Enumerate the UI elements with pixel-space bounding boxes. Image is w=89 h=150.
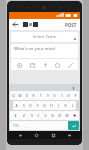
button[interactable]: W: [16, 91, 23, 100]
button[interactable]: R: [30, 91, 37, 100]
staticText: L: [72, 103, 74, 108]
button[interactable]: POST: [65, 22, 77, 28]
staticText: D: [29, 103, 32, 108]
button[interactable]: A: [13, 101, 20, 110]
staticText: H: [50, 103, 53, 108]
button[interactable]: Photo: [14, 60, 24, 70]
staticText: U: [53, 93, 56, 98]
button[interactable]: Home: [32, 131, 40, 139]
button[interactable]: M: [63, 111, 70, 120]
button[interactable]: Back: [11, 20, 20, 29]
button[interactable]: E: [23, 91, 30, 100]
staticText: V: [44, 113, 47, 118]
button[interactable]: Numbers: [10, 121, 22, 130]
button[interactable]: D: [27, 101, 34, 110]
button[interactable]: .: [62, 121, 68, 130]
staticText: G: [43, 103, 46, 108]
staticText: C: [37, 113, 40, 118]
button[interactable]: O: [65, 91, 72, 100]
button[interactable]: Camera: [27, 60, 37, 70]
button[interactable]: Menu: [65, 131, 73, 139]
button[interactable]: B: [49, 111, 56, 120]
button[interactable]: Q: [10, 91, 16, 100]
button[interactable]: L: [69, 101, 76, 110]
staticText: A: [15, 103, 18, 108]
button[interactable]: T: [37, 91, 44, 100]
staticText: N: [58, 113, 61, 118]
staticText: J: [58, 103, 59, 108]
staticText: I: [61, 93, 63, 98]
staticText: Q: [12, 93, 15, 98]
button[interactable]: H: [48, 101, 55, 110]
staticText: M: [65, 113, 69, 118]
button[interactable]: Select Team: [11, 32, 78, 42]
staticText: W: [18, 93, 22, 98]
button[interactable]: C: [35, 111, 42, 120]
staticText: ?123: [13, 124, 19, 128]
staticText: E: [26, 93, 28, 98]
staticText: ,: [25, 123, 26, 128]
button[interactable]: S: [20, 101, 27, 110]
button[interactable]: Enter: [68, 121, 79, 130]
staticText: K: [64, 103, 67, 108]
button[interactable]: Record: [40, 60, 50, 70]
button[interactable]: Back: [16, 131, 24, 139]
button[interactable]: U: [51, 91, 58, 100]
button[interactable]: G: [41, 101, 48, 110]
staticText: O: [67, 93, 70, 98]
button[interactable]: N: [56, 111, 63, 120]
button[interactable]: J: [55, 101, 62, 110]
staticText: R: [32, 93, 35, 98]
button[interactable]: Emoji: [52, 60, 62, 70]
staticText: X: [31, 113, 33, 118]
staticText: T: [40, 93, 42, 98]
staticText: Z: [23, 113, 25, 118]
button[interactable]: Shift: [10, 111, 20, 120]
button[interactable]: V: [42, 111, 49, 120]
button[interactable]: Recents: [49, 131, 57, 139]
staticText: .: [65, 123, 66, 128]
staticText: POST: [65, 22, 77, 28]
button[interactable]: Backspace: [70, 111, 79, 120]
staticText: B: [51, 113, 54, 118]
staticText: Select Team: [33, 34, 57, 40]
staticText: What's on your mind: [14, 46, 55, 52]
staticText: F: [37, 103, 39, 108]
button[interactable]: P: [72, 91, 79, 100]
button[interactable]: I: [58, 91, 65, 100]
button[interactable]: ,: [22, 121, 28, 130]
button[interactable]: X: [28, 111, 35, 120]
button[interactable]: Y: [44, 91, 51, 100]
button[interactable]: Draw: [65, 60, 75, 70]
staticText: S: [23, 103, 25, 108]
staticText: Y: [47, 93, 49, 98]
button[interactable]: K: [62, 101, 69, 110]
button[interactable]: Z: [20, 111, 28, 120]
button[interactable]: What's on your mind: [11, 44, 78, 58]
staticText: P: [74, 93, 77, 98]
button[interactable]: F: [34, 101, 41, 110]
